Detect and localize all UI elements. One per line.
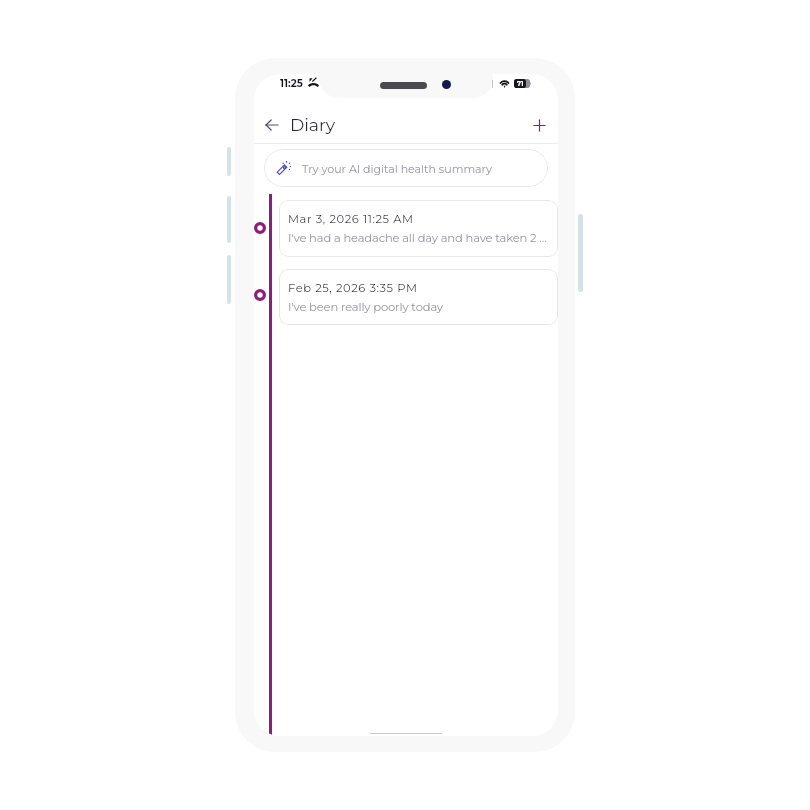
button[interactable]: Try your AI digital health summary	[264, 149, 548, 187]
staticText: Diary	[290, 114, 336, 135]
button[interactable]: Add entry	[527, 113, 551, 137]
staticText: Try your AI digital health summary	[302, 162, 492, 175]
button[interactable]: Feb 25, 2026 3:35 PM	[279, 269, 558, 325]
staticText: I've had a headache all day and have tak…	[288, 231, 554, 245]
staticText: 11:25	[280, 77, 303, 89]
button[interactable]: Back	[260, 113, 284, 137]
staticText: Feb 25, 2026 3:35 PM	[288, 281, 418, 295]
staticText: I've been really poorly today	[288, 300, 443, 314]
staticText: Mar 3, 2026 11:25 AM	[288, 212, 414, 226]
button[interactable]: Mar 3, 2026 11:25 AM	[279, 200, 558, 257]
staticText: 71	[517, 80, 524, 88]
